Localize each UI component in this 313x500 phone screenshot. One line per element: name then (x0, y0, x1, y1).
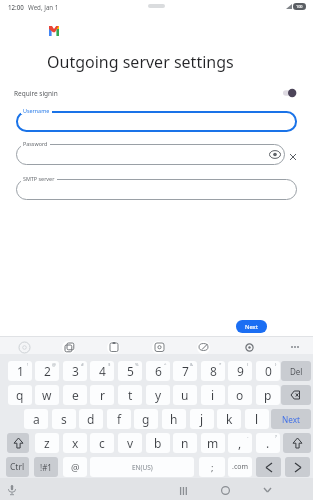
staticText: 5 (127, 363, 134, 379)
button[interactable]: 5 (118, 361, 142, 381)
button[interactable]: . (256, 433, 280, 453)
button[interactable] (155, 343, 164, 352)
button[interactable] (256, 457, 281, 477)
staticText: z (44, 435, 50, 451)
staticText: g (142, 411, 150, 427)
button[interactable]: a (24, 409, 48, 429)
staticText: t (128, 387, 133, 403)
button[interactable]: !#1 (34, 457, 58, 477)
staticText: Next (282, 414, 300, 425)
button[interactable]: k (217, 409, 241, 429)
button[interactable] (221, 486, 230, 495)
button[interactable]: u (173, 385, 197, 405)
button[interactable] (281, 385, 311, 405)
staticText: ; (211, 461, 214, 474)
button[interactable] (285, 457, 310, 477)
button[interactable]: 3 (63, 361, 87, 381)
button[interactable] (199, 343, 209, 352)
button[interactable]: y (146, 385, 170, 405)
staticText: 6 (155, 363, 162, 379)
staticText: $ (108, 362, 111, 368)
button[interactable]: b (146, 433, 170, 453)
button[interactable]: 7 (173, 361, 197, 381)
staticText: 12:00 (8, 3, 24, 11)
staticText: & (190, 362, 194, 368)
button[interactable] (245, 343, 254, 352)
button[interactable]: Ctrl (6, 457, 29, 477)
staticText: k (226, 411, 233, 427)
button[interactable] (16, 144, 285, 165)
button[interactable]: p (256, 385, 280, 405)
staticText: Next (245, 323, 258, 331)
button[interactable]: 0 (256, 361, 280, 381)
button[interactable]: z (35, 433, 59, 453)
staticText: e (72, 387, 79, 403)
staticText: 9 (237, 363, 244, 379)
button[interactable]: , (228, 433, 252, 453)
staticText: v (127, 435, 134, 451)
button[interactable]: q (8, 385, 32, 405)
button[interactable]: EN(US) (90, 457, 194, 477)
button[interactable] (19, 342, 30, 353)
button[interactable]: c (90, 433, 114, 453)
staticText: f (117, 411, 122, 427)
button[interactable]: i (201, 385, 225, 405)
staticText: Require signin (14, 89, 58, 98)
button[interactable]: 1 (8, 361, 32, 381)
button[interactable] (180, 487, 187, 495)
button[interactable] (264, 488, 271, 492)
staticText: Ctrl (10, 461, 25, 473)
button[interactable]: f (107, 409, 131, 429)
button[interactable]: @ (63, 457, 87, 477)
button[interactable]: 6 (146, 361, 170, 381)
button[interactable]: n (173, 433, 197, 453)
button[interactable]: j (190, 409, 214, 429)
staticText: - (247, 434, 249, 440)
button[interactable] (290, 154, 296, 160)
button[interactable]: Require signin (0, 84, 313, 102)
staticText: EN(US) (132, 463, 153, 472)
button[interactable]: s (52, 409, 76, 429)
button[interactable]: l (245, 409, 269, 429)
staticText: ) (275, 362, 277, 368)
button[interactable]: d (79, 409, 103, 429)
button[interactable]: Next (236, 320, 267, 333)
button[interactable]: 2 (35, 361, 59, 381)
button[interactable]: m (201, 433, 225, 453)
staticText: i (211, 387, 215, 403)
button[interactable]: Next (271, 409, 311, 429)
staticText: 7 (182, 363, 189, 379)
button[interactable] (16, 179, 297, 200)
staticText: . (266, 435, 270, 451)
button[interactable]: r (90, 385, 114, 405)
button[interactable]: e (63, 385, 87, 405)
button[interactable]: h (162, 409, 186, 429)
button[interactable] (283, 433, 311, 453)
button[interactable] (269, 149, 281, 160)
staticText: SMTP server (23, 175, 55, 182)
button[interactable] (16, 111, 297, 132)
button[interactable] (8, 485, 16, 496)
button[interactable] (291, 346, 299, 348)
button[interactable]: .com (228, 457, 252, 477)
button[interactable]: w (35, 385, 59, 405)
staticText: w (42, 387, 52, 403)
staticText: % (135, 362, 139, 368)
staticText: Password (23, 140, 48, 147)
button[interactable] (65, 343, 74, 352)
button[interactable]: o (228, 385, 252, 405)
button[interactable]: v (118, 433, 142, 453)
button[interactable] (110, 342, 118, 352)
button[interactable]: 8 (201, 361, 225, 381)
button[interactable]: Del (281, 361, 311, 381)
button[interactable]: g (134, 409, 158, 429)
staticText: Wed, Jan 1 (28, 3, 59, 11)
staticText: 1 (17, 363, 24, 379)
button[interactable]: t (118, 385, 142, 405)
button[interactable]: x (63, 433, 87, 453)
button[interactable]: ; (199, 457, 225, 477)
button[interactable]: 4 (90, 361, 114, 381)
button[interactable]: 9 (228, 361, 252, 381)
staticText: o (236, 387, 244, 403)
button[interactable] (7, 433, 29, 453)
